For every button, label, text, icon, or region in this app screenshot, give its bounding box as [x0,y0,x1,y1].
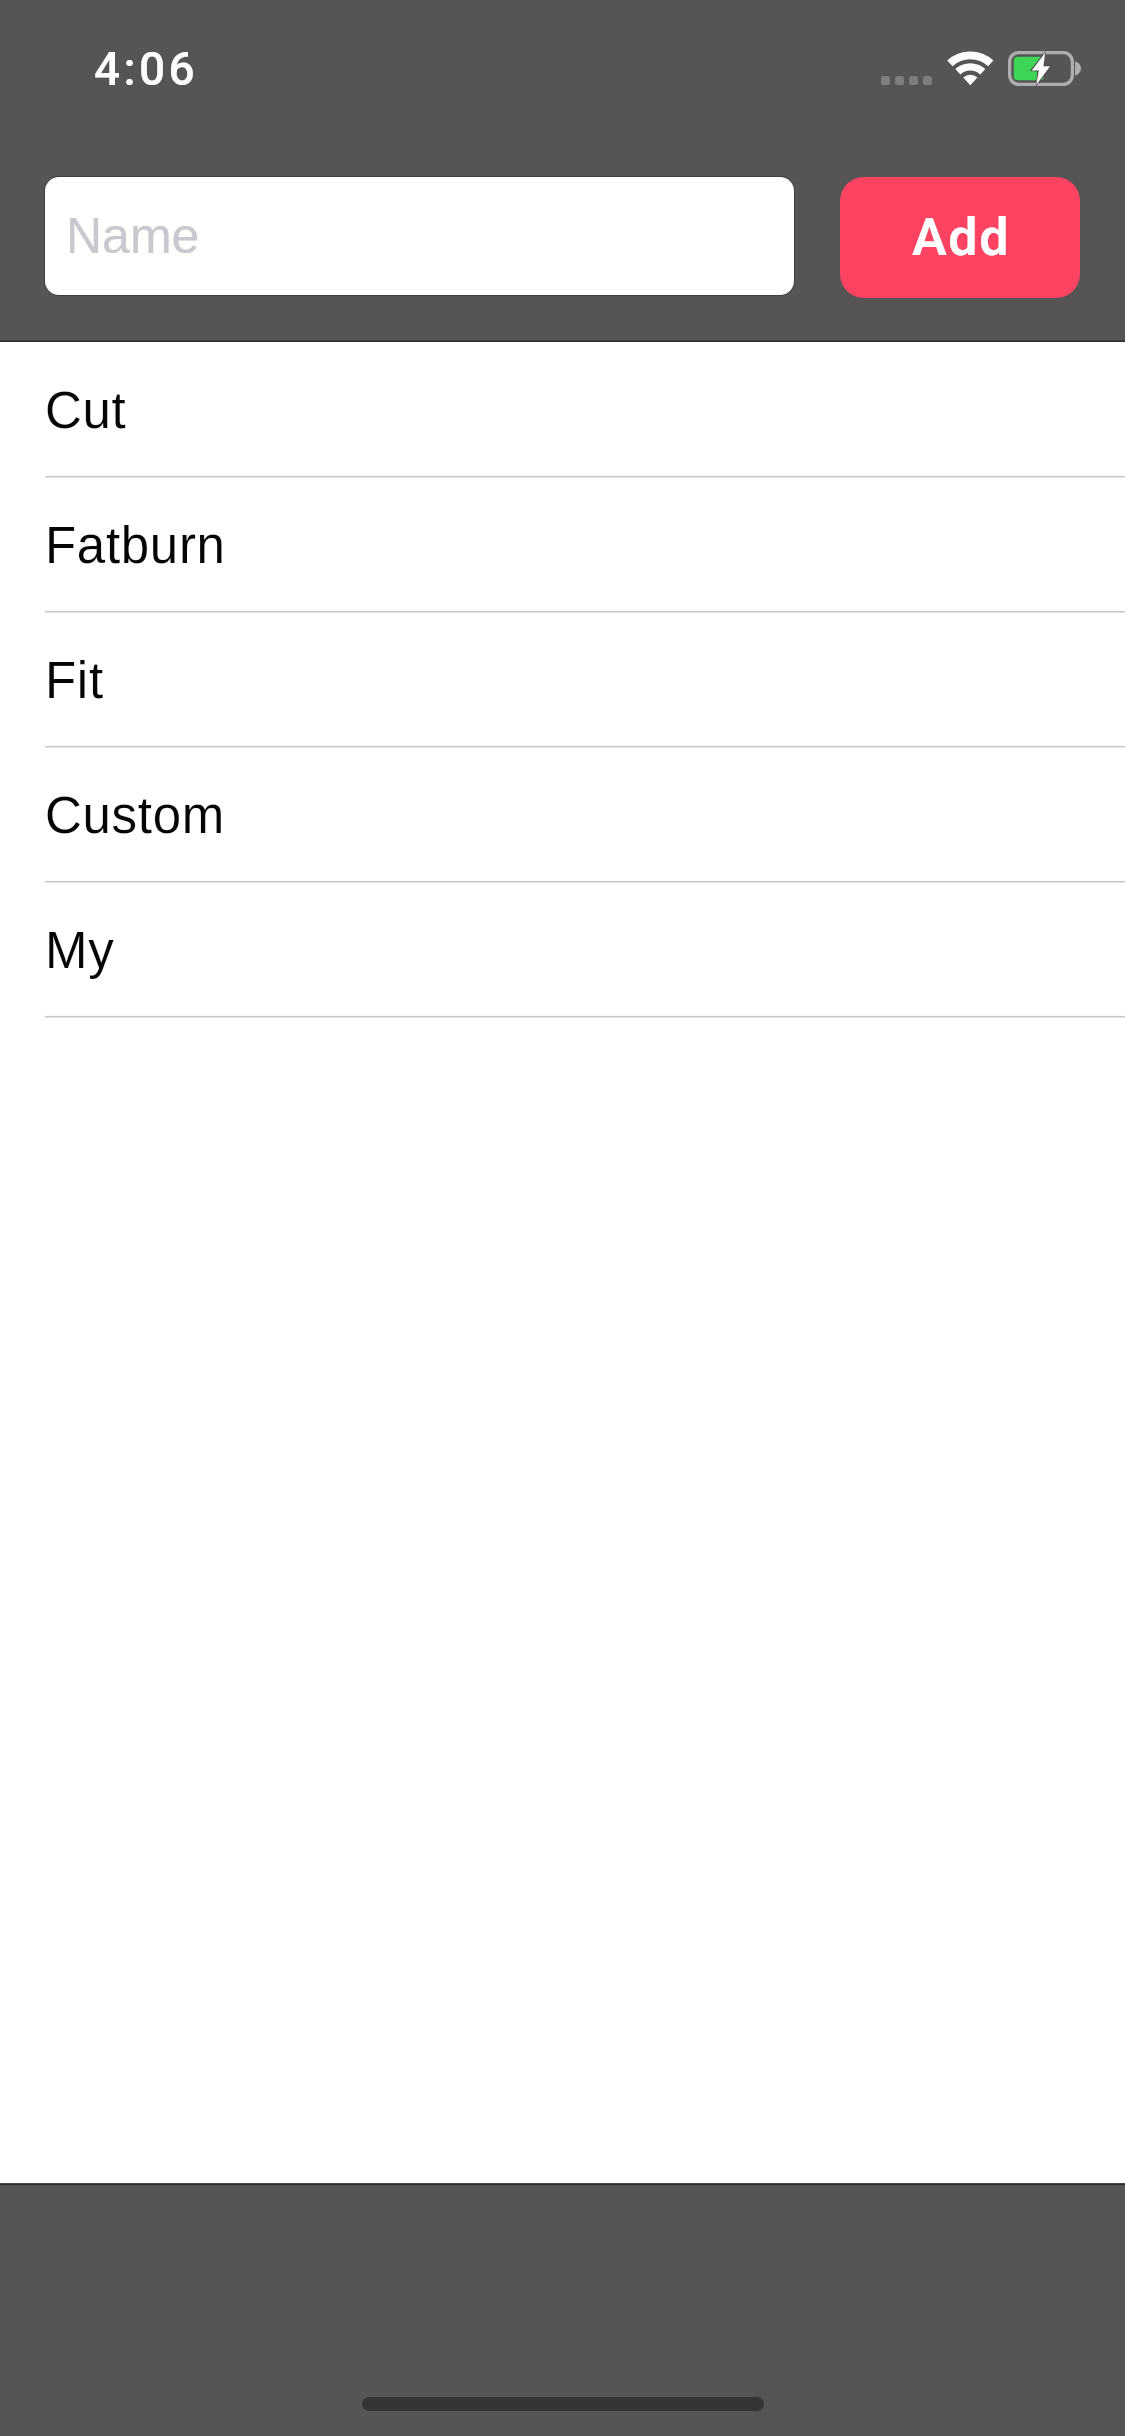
button[interactable]: Custom [0,747,1125,882]
button[interactable]: Name [45,177,794,295]
staticText: Fatburn [45,517,226,574]
other: Battery charging [1008,51,1086,87]
staticText: Add [912,207,1011,268]
staticText: My [45,922,115,979]
button[interactable]: Fatburn [0,477,1125,612]
button[interactable]: Fit [0,612,1125,747]
staticText: Cut [45,382,127,439]
staticText: Fit [45,652,104,709]
button[interactable]: Add [840,177,1080,298]
other: Wi-Fi [946,50,995,87]
staticText: 4:06 [94,42,199,96]
button[interactable]: Cut [0,342,1125,477]
button[interactable]: My [0,882,1125,1017]
staticText: Custom [45,787,225,844]
staticText: Name [66,208,200,264]
other: Cellular signal [881,76,932,86]
